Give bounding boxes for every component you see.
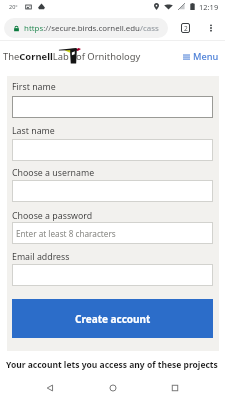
staticText: Email address [12, 251, 70, 263]
staticText: Your account lets you access any of thes… [6, 359, 218, 371]
staticText: 12:19 [199, 2, 219, 12]
button[interactable] [12, 180, 213, 202]
button[interactable]: Enter at least 8 characters [12, 222, 213, 244]
staticText: 20° [9, 3, 18, 10]
staticText: Choose a username [12, 167, 95, 179]
staticText: First name [12, 81, 56, 93]
staticText: TheCornellLab [3, 50, 69, 63]
staticText: Choose a password [12, 210, 93, 222]
button[interactable]: Create account [12, 299, 213, 338]
button[interactable]: Recent apps [163, 376, 187, 400]
button[interactable] [12, 264, 213, 286]
button[interactable]: Home [101, 376, 125, 400]
staticText: Create account [75, 312, 151, 326]
button[interactable]: Tabs [178, 21, 192, 35]
button[interactable]: More options [204, 21, 218, 35]
button[interactable]: https://secure.birds.cornell.edu/cass [4, 18, 168, 38]
staticText: Enter at least 8 characters [16, 228, 116, 239]
staticText: https://secure.birds.cornell.edu/cass [24, 23, 159, 34]
staticText: Last name [12, 125, 55, 137]
staticText: of Ornithology [76, 50, 141, 63]
staticText: 2 [184, 24, 188, 33]
staticText: Menu [193, 50, 219, 63]
button[interactable]: Menu [183, 50, 219, 63]
button[interactable] [12, 139, 213, 161]
button[interactable] [12, 96, 213, 118]
button[interactable]: Back [38, 376, 62, 400]
